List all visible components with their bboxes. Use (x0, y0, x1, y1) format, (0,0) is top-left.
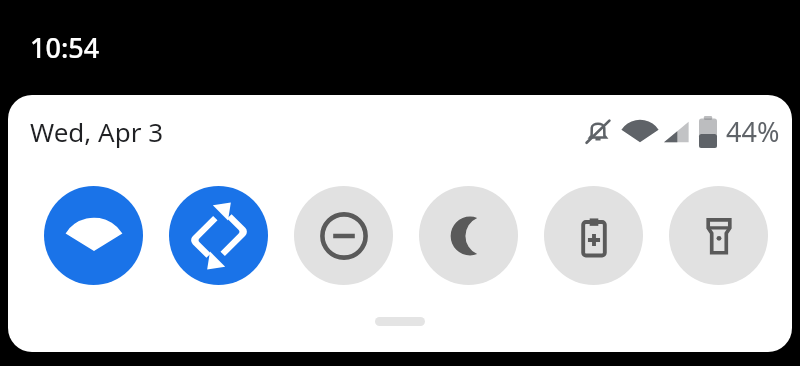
button[interactable] (375, 317, 425, 326)
staticText: 10:54 (30, 29, 100, 66)
staticText: Wed, Apr 3 (30, 114, 164, 149)
button[interactable]: Do Not Disturb (294, 186, 393, 285)
staticText: 44% (726, 113, 780, 150)
button[interactable]: Auto-rotate (169, 186, 268, 285)
button[interactable]: Night Light (419, 186, 518, 285)
button[interactable]: Flashlight (669, 186, 768, 285)
button[interactable]: Wi-Fi (44, 186, 143, 285)
button[interactable]: Battery Saver (544, 186, 643, 285)
